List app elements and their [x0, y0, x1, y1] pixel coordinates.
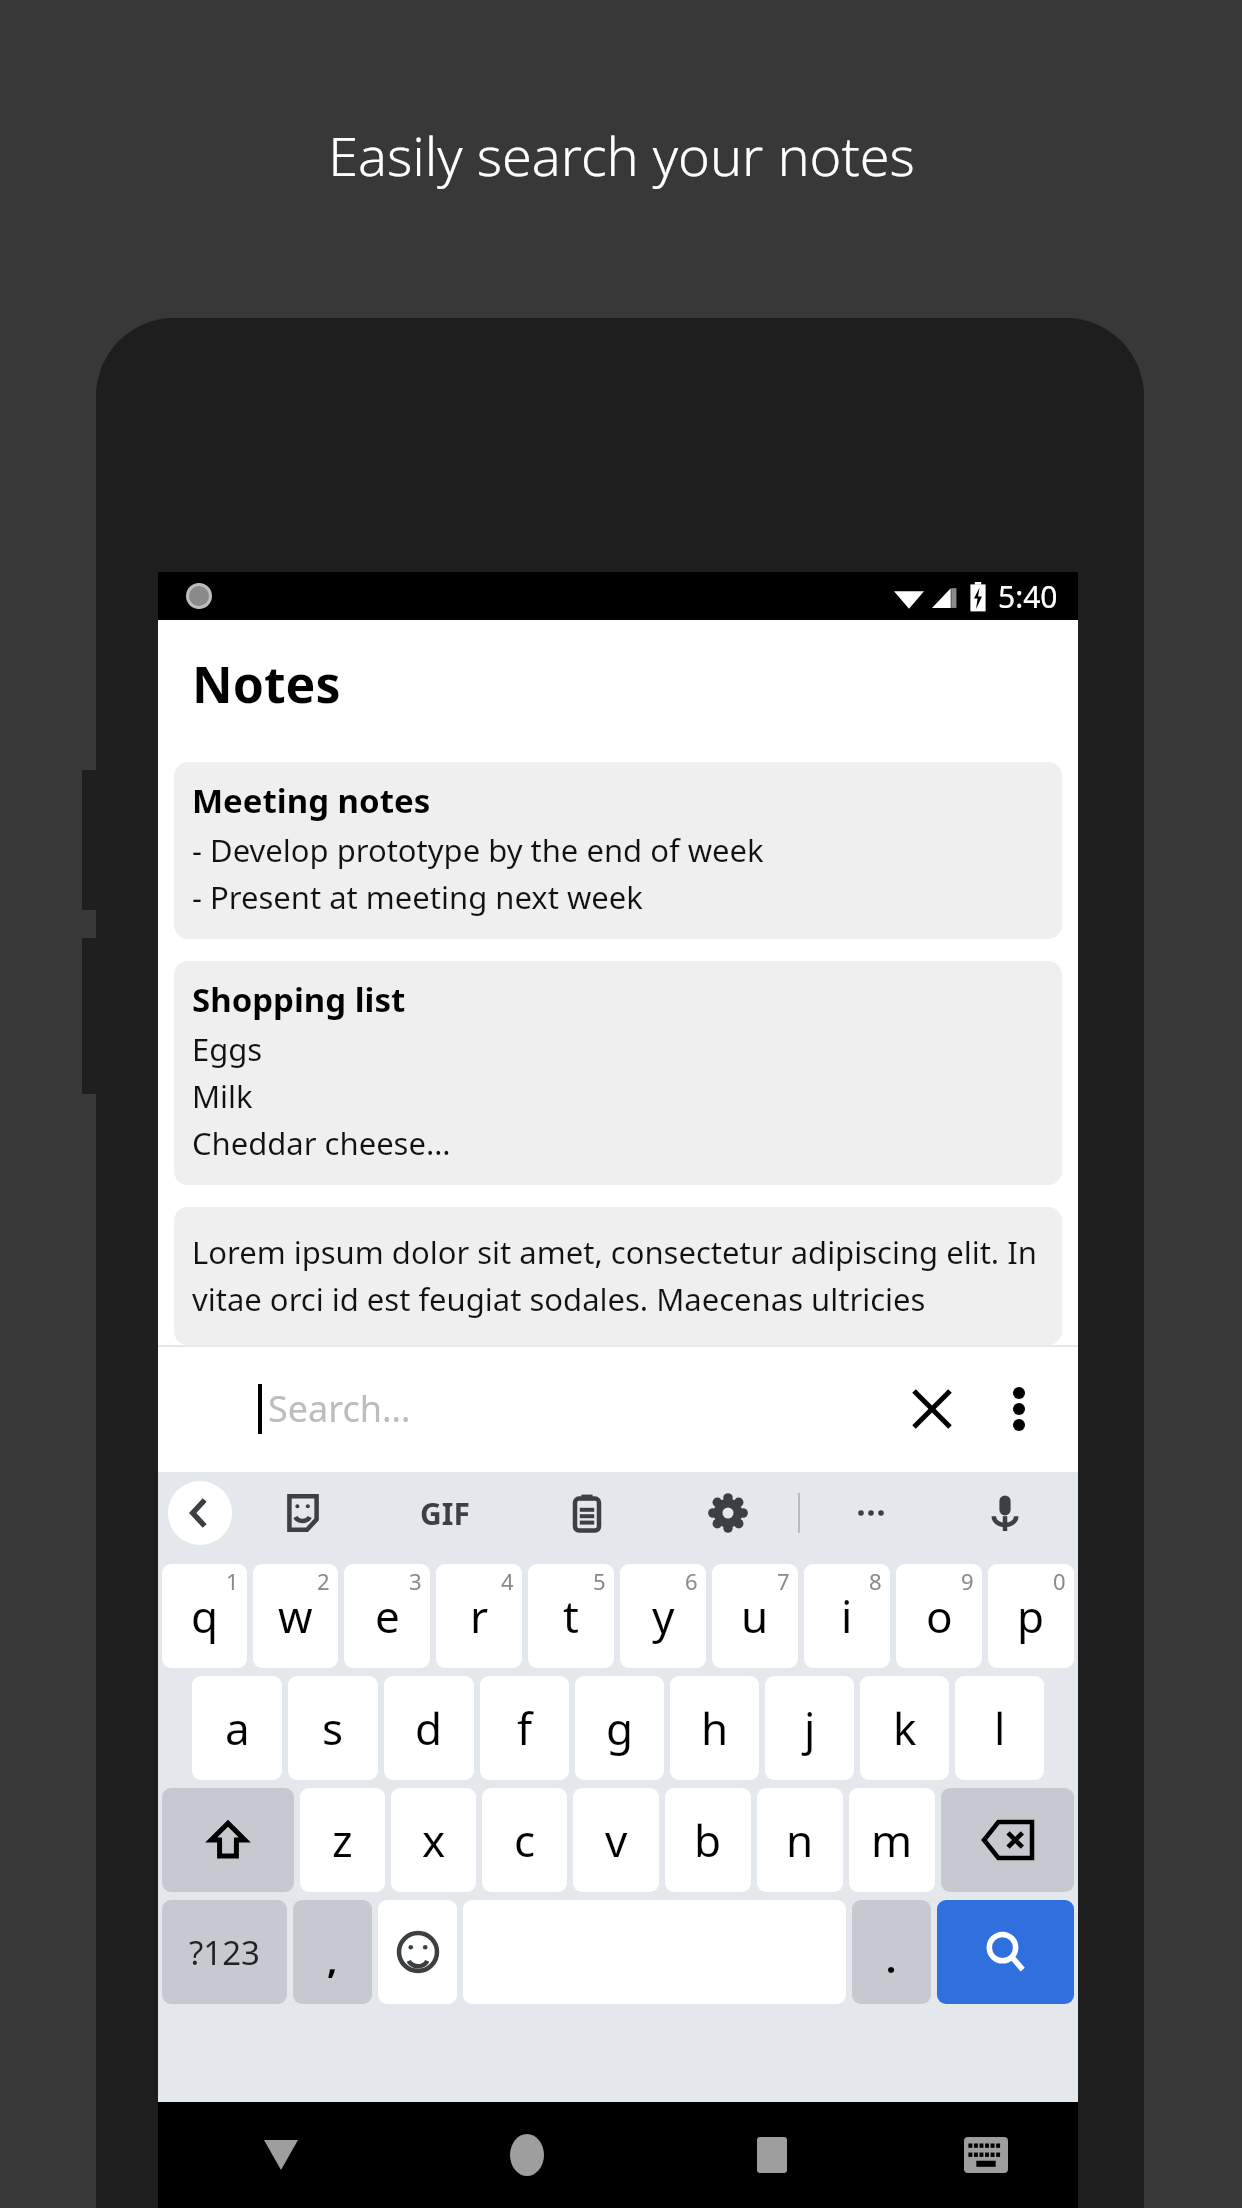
button[interactable]: Settings — [657, 1472, 798, 1554]
staticText: t — [563, 1586, 579, 1646]
staticText: l — [994, 1698, 1006, 1758]
button[interactable]: w — [253, 1564, 338, 1668]
staticText: Cheddar cheese… — [192, 1122, 451, 1164]
staticText: - Present at meeting next week — [192, 876, 643, 918]
staticText: Search… — [268, 1384, 411, 1433]
button[interactable]: , — [293, 1900, 372, 2004]
staticText: v — [605, 1810, 628, 1870]
staticText: h — [701, 1698, 729, 1758]
button[interactable]: f — [480, 1676, 569, 1780]
button[interactable]: a — [192, 1676, 282, 1780]
staticText: Easily search your notes — [328, 118, 915, 192]
staticText: c — [514, 1810, 536, 1870]
staticText: , — [327, 1935, 338, 1984]
staticText: vitae orci id est feugiat sodales. Maece… — [192, 1278, 1044, 1320]
button[interactable]: k — [860, 1676, 949, 1780]
button[interactable]: Shopping list — [174, 961, 1062, 1185]
staticText: . — [886, 1935, 897, 1984]
button[interactable]: . — [852, 1900, 931, 2004]
button[interactable]: j — [765, 1676, 854, 1780]
staticText: f — [517, 1698, 533, 1758]
button[interactable]: Voice input — [941, 1472, 1068, 1554]
button[interactable]: u — [712, 1564, 798, 1668]
button[interactable]: Emoji — [378, 1900, 457, 2004]
staticText: x — [422, 1810, 446, 1870]
button[interactable]: Back — [168, 1481, 232, 1545]
button[interactable]: Back — [158, 2102, 404, 2208]
staticText: a — [225, 1698, 250, 1758]
staticText: y — [652, 1586, 675, 1646]
staticText: Milk — [192, 1075, 253, 1117]
staticText: w — [278, 1586, 313, 1646]
staticText: b — [694, 1810, 722, 1870]
button[interactable]: r — [436, 1564, 522, 1668]
staticText: 8 — [869, 1566, 882, 1596]
button[interactable]: n — [757, 1788, 843, 1892]
staticText: e — [375, 1586, 400, 1646]
button[interactable]: Close search — [892, 1369, 972, 1449]
staticText: r — [470, 1586, 489, 1646]
button[interactable]: y — [620, 1564, 706, 1668]
button[interactable]: More — [800, 1472, 941, 1554]
button[interactable]: p — [988, 1564, 1074, 1668]
button[interactable]: Shift — [162, 1788, 294, 1892]
staticText: Eggs — [192, 1028, 263, 1070]
button[interactable]: Stickers — [232, 1472, 374, 1554]
button[interactable]: g — [575, 1676, 664, 1780]
button[interactable]: i — [804, 1564, 890, 1668]
button[interactable]: h — [670, 1676, 759, 1780]
button[interactable]: l — [955, 1676, 1044, 1780]
staticText: 7 — [777, 1566, 790, 1596]
button[interactable]: Search — [937, 1900, 1074, 2004]
button[interactable]: d — [384, 1676, 474, 1780]
staticText: u — [741, 1586, 769, 1646]
staticText: Shopping list — [192, 977, 406, 1022]
staticText: 4 — [501, 1566, 514, 1596]
staticText: d — [415, 1698, 443, 1758]
button[interactable]: b — [665, 1788, 751, 1892]
button[interactable]: Keyboard active — [894, 2102, 1078, 2208]
staticText: ?123 — [189, 1930, 260, 1975]
staticText: - Develop prototype by the end of week — [192, 829, 764, 871]
staticText: z — [332, 1810, 353, 1870]
button[interactable]: Lorem ipsum dolor sit amet, consectetur … — [174, 1207, 1062, 1345]
button[interactable]: Home — [404, 2102, 649, 2208]
button[interactable]: ?123 — [162, 1900, 287, 2004]
button[interactable]: z — [300, 1788, 385, 1892]
button[interactable]: o — [896, 1564, 982, 1668]
button[interactable]: q — [162, 1564, 247, 1668]
button[interactable]: Recent apps — [649, 2102, 894, 2208]
button[interactable]: c — [482, 1788, 567, 1892]
staticText: n — [786, 1810, 814, 1870]
staticText: GIF — [420, 1493, 470, 1534]
button[interactable]: t — [528, 1564, 614, 1668]
staticText: Notes — [192, 650, 341, 718]
staticText: 1 — [226, 1566, 239, 1596]
button[interactable]: x — [391, 1788, 476, 1892]
button[interactable]: e — [344, 1564, 430, 1668]
button[interactable]: GIF — [374, 1472, 516, 1554]
staticText: m — [871, 1810, 913, 1870]
staticText: 3 — [409, 1566, 422, 1596]
staticText: s — [322, 1698, 344, 1758]
staticText: q — [191, 1586, 219, 1646]
staticText: 2 — [317, 1566, 330, 1596]
staticText: j — [804, 1698, 816, 1758]
staticText: k — [893, 1698, 917, 1758]
staticText: 6 — [685, 1566, 698, 1596]
button[interactable]: Clipboard — [516, 1472, 657, 1554]
staticText: p — [1017, 1586, 1045, 1646]
staticText: 0 — [1053, 1566, 1066, 1596]
button[interactable]: s — [288, 1676, 378, 1780]
staticText: i — [841, 1586, 853, 1646]
button[interactable]: Meeting notes — [174, 762, 1062, 939]
button[interactable]: Backspace — [941, 1788, 1074, 1892]
staticText: 5 — [593, 1566, 606, 1596]
button[interactable]: m — [849, 1788, 935, 1892]
button[interactable]: More options — [984, 1374, 1054, 1444]
staticText: 5:40 — [998, 576, 1058, 617]
staticText: 9 — [961, 1566, 974, 1596]
button[interactable]: v — [573, 1788, 659, 1892]
